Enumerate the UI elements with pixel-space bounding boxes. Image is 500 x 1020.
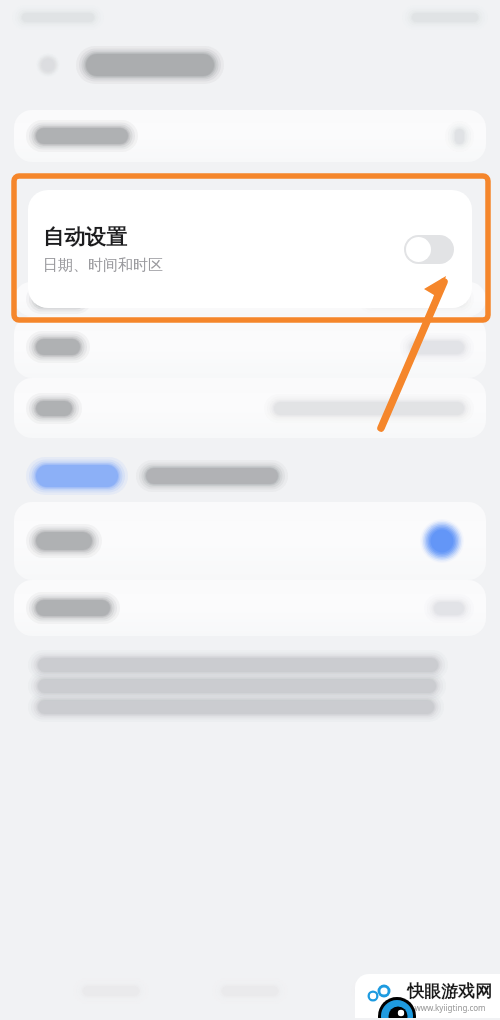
staticText: www.kyiigting.com [414, 1002, 486, 1013]
staticText: 日期、时间和时区 [43, 256, 163, 275]
staticText: 快眼游戏网 [407, 981, 492, 1002]
button[interactable]: 自动设置 [28, 190, 472, 308]
button[interactable]: 自动设置开关 [404, 235, 454, 264]
staticText: 自动设置 [43, 224, 127, 250]
